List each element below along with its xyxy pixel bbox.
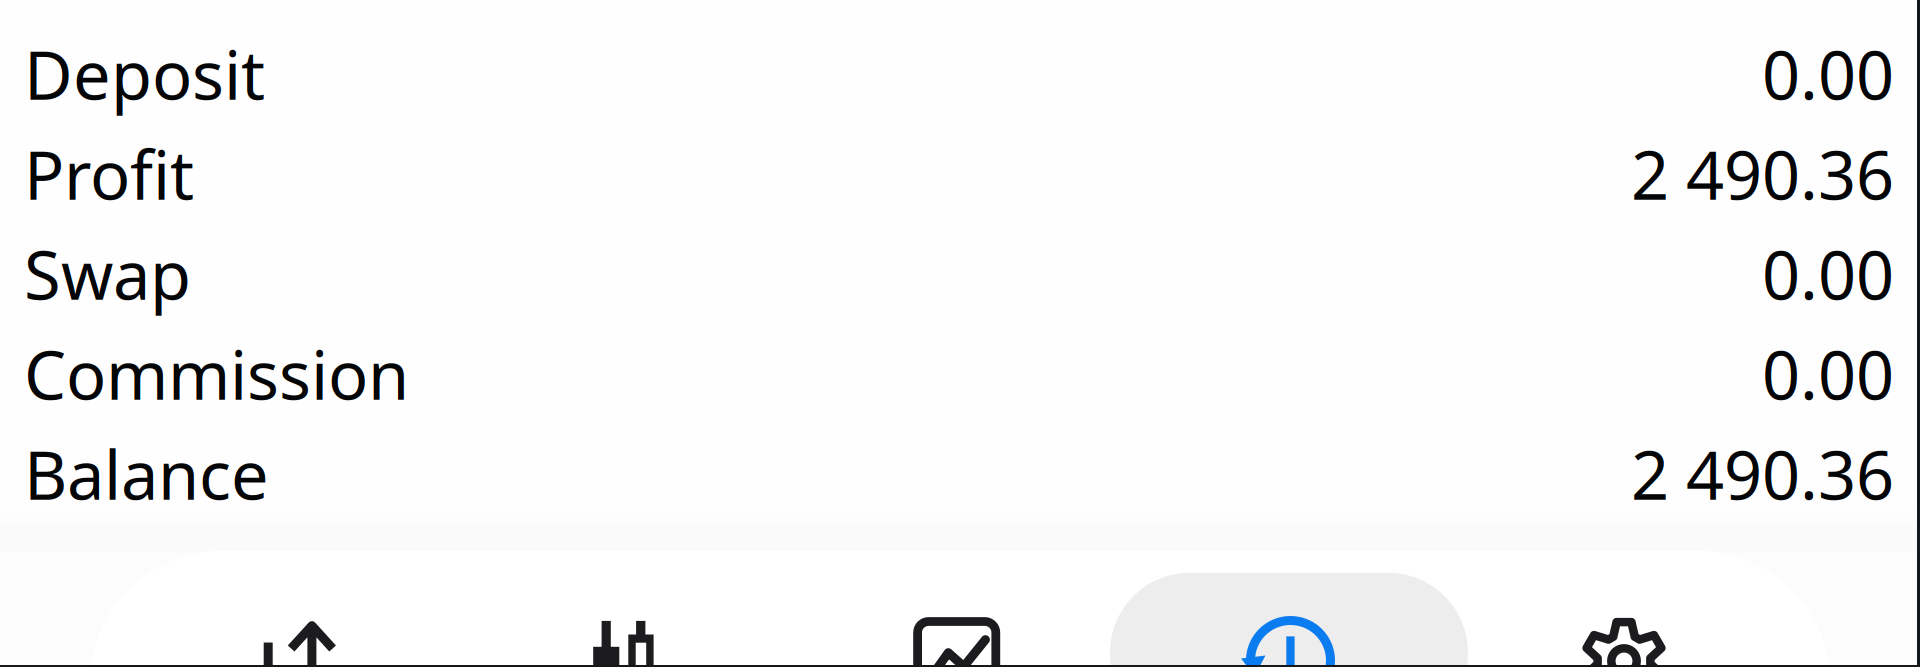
staticText: Deposit <box>24 30 265 118</box>
staticText: 2 490.36 <box>1631 130 1894 218</box>
staticText: 0.00 <box>1762 330 1894 418</box>
button[interactable]: History <box>1122 551 1456 667</box>
button[interactable]: Settings <box>1456 551 1789 667</box>
button[interactable]: Quotes <box>122 551 455 667</box>
staticText: Swap <box>24 230 191 318</box>
staticText: 0.00 <box>1762 30 1894 118</box>
staticText: Balance <box>24 430 269 518</box>
staticText: Commission <box>24 330 409 418</box>
button[interactable]: Trade <box>789 551 1122 667</box>
button[interactable]: Charts <box>455 551 789 667</box>
staticText: 2 490.36 <box>1631 430 1894 518</box>
staticText: Profit <box>24 130 194 218</box>
staticText: 0.00 <box>1762 230 1894 318</box>
